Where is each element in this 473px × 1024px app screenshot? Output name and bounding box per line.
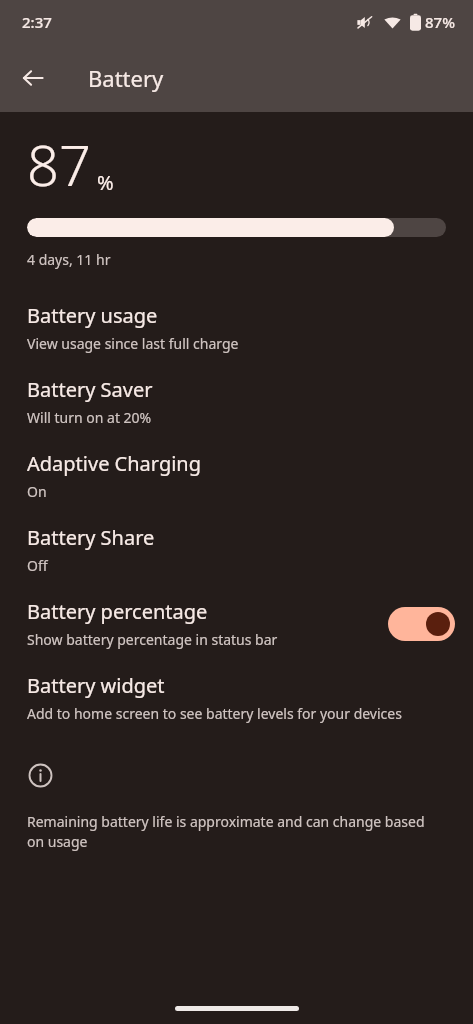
staticText: Add to home screen to see battery levels…	[27, 704, 402, 723]
staticText: On	[27, 482, 47, 501]
staticText: %	[97, 169, 114, 196]
staticText: Will turn on at 20%	[27, 408, 152, 427]
staticText: Remaining battery life is approximate an…	[27, 812, 433, 852]
button[interactable]: Battery Share	[0, 518, 473, 592]
staticText: 4 days, 11 hr	[27, 250, 111, 269]
staticText: 2:37	[22, 12, 52, 32]
button[interactable]: Battery widget	[0, 666, 473, 740]
button[interactable]: Back	[9, 54, 57, 102]
staticText: View usage since last full charge	[27, 334, 239, 353]
staticText: Battery Share	[27, 524, 155, 551]
staticText: 87%	[425, 12, 455, 32]
staticText: Battery usage	[27, 302, 158, 329]
button[interactable]: Battery percentage	[0, 592, 473, 666]
button[interactable]: Battery usage	[0, 296, 473, 370]
staticText: Battery Saver	[27, 376, 153, 403]
staticText: Battery widget	[27, 672, 165, 699]
staticText: Off	[27, 556, 48, 575]
staticText: Show battery percentage in status bar	[27, 630, 278, 649]
staticText: 87	[27, 126, 91, 202]
staticText: Adaptive Charging	[27, 450, 202, 477]
button[interactable]: Battery Saver	[0, 370, 473, 444]
button[interactable]: Battery percentage toggle	[388, 607, 455, 641]
staticText: Battery	[88, 63, 164, 93]
button[interactable]: Adaptive Charging	[0, 444, 473, 518]
staticText: Battery percentage	[27, 598, 208, 625]
